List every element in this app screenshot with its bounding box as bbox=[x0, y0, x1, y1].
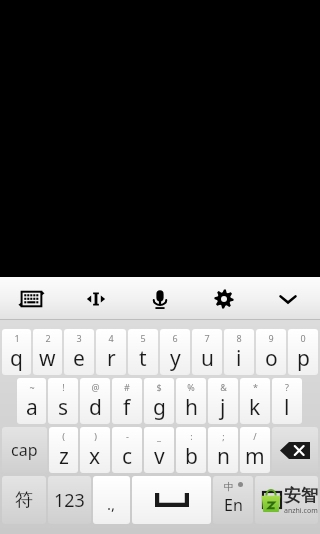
button[interactable]: 2 bbox=[33, 329, 62, 375]
button[interactable]: Keyboard layout bbox=[0, 277, 64, 320]
staticText: j bbox=[220, 393, 226, 422]
staticText: 6 bbox=[172, 332, 178, 344]
button[interactable]: % bbox=[176, 378, 206, 424]
staticText: k bbox=[249, 393, 261, 422]
staticText: 8 bbox=[236, 332, 242, 344]
staticText: 安智 bbox=[284, 485, 318, 506]
staticText: r bbox=[107, 344, 116, 373]
button[interactable]: 0 bbox=[288, 329, 318, 375]
staticText: m bbox=[245, 442, 265, 471]
staticText: y bbox=[170, 344, 181, 373]
staticText: 0 bbox=[300, 332, 306, 344]
button[interactable]: _ bbox=[144, 427, 174, 473]
button[interactable]: cap bbox=[2, 427, 47, 473]
staticText: ., bbox=[107, 494, 116, 514]
staticText: x bbox=[89, 442, 101, 471]
staticText: b bbox=[185, 442, 198, 471]
staticText: cap bbox=[11, 439, 38, 461]
staticText: s bbox=[58, 393, 69, 422]
staticText: anzhi.com bbox=[284, 506, 318, 516]
button[interactable]: Settings bbox=[192, 277, 256, 320]
staticText: q bbox=[10, 344, 23, 373]
staticText: : bbox=[190, 430, 193, 442]
button[interactable]: : bbox=[176, 427, 206, 473]
staticText: l bbox=[284, 393, 290, 422]
other: Space bbox=[132, 476, 211, 524]
staticText: ) bbox=[94, 430, 97, 442]
button[interactable]: 4 bbox=[96, 329, 126, 375]
staticText: h bbox=[185, 393, 198, 422]
button[interactable]: * bbox=[240, 378, 270, 424]
staticText: ( bbox=[62, 430, 65, 442]
staticText: 5 bbox=[140, 332, 146, 344]
staticText: ; bbox=[222, 430, 225, 442]
button[interactable]: 5 bbox=[128, 329, 158, 375]
button[interactable]: ; bbox=[208, 427, 238, 473]
staticText: 3 bbox=[76, 332, 82, 344]
staticText: 4 bbox=[108, 332, 114, 344]
button[interactable]: 符 bbox=[2, 476, 46, 524]
button[interactable]: Move cursor bbox=[64, 277, 128, 320]
staticText: ? bbox=[285, 381, 289, 393]
staticText: - bbox=[126, 430, 129, 442]
button[interactable]: 7 bbox=[192, 329, 222, 375]
button[interactable]: 中 bbox=[213, 476, 253, 524]
button[interactable]: 123 bbox=[48, 476, 91, 524]
button[interactable]: & bbox=[208, 378, 238, 424]
staticText: c bbox=[122, 442, 133, 471]
staticText: 符 bbox=[15, 489, 33, 512]
button[interactable]: 6 bbox=[160, 329, 190, 375]
button[interactable]: Hide keyboard bbox=[256, 277, 320, 320]
staticText: 2 bbox=[45, 332, 51, 344]
staticText: 1 bbox=[14, 332, 20, 344]
staticText: i bbox=[236, 344, 242, 373]
staticText: d bbox=[89, 393, 102, 422]
staticText: t bbox=[139, 344, 147, 373]
button[interactable]: ? bbox=[272, 378, 302, 424]
other: Backspace bbox=[272, 427, 318, 473]
staticText: o bbox=[265, 344, 278, 373]
staticText: @ bbox=[91, 381, 100, 393]
staticText: e bbox=[73, 344, 85, 373]
button[interactable]: Voice input bbox=[128, 277, 192, 320]
button[interactable]: Backspace bbox=[272, 427, 318, 473]
staticText: & bbox=[220, 381, 227, 393]
staticText: v bbox=[154, 442, 165, 471]
staticText: En bbox=[224, 494, 243, 516]
staticText: % bbox=[187, 381, 195, 393]
button[interactable]: $ bbox=[144, 378, 174, 424]
staticText: $ bbox=[156, 381, 162, 393]
staticText: 7 bbox=[204, 332, 210, 344]
button[interactable]: 8 bbox=[224, 329, 254, 375]
button[interactable]: ( bbox=[49, 427, 78, 473]
staticText: u bbox=[201, 344, 214, 373]
staticText: ~ bbox=[29, 381, 35, 393]
staticText: 中 bbox=[224, 480, 234, 493]
other: Enter bbox=[255, 476, 318, 524]
button[interactable]: - bbox=[112, 427, 142, 473]
button[interactable]: 1 bbox=[2, 329, 31, 375]
button[interactable]: Enter bbox=[255, 476, 318, 524]
button[interactable]: 3 bbox=[64, 329, 94, 375]
staticText: / bbox=[253, 430, 257, 442]
button[interactable]: ~ bbox=[17, 378, 46, 424]
button[interactable]: ) bbox=[80, 427, 110, 473]
staticText: 123 bbox=[54, 488, 85, 513]
button[interactable]: ., bbox=[93, 476, 130, 524]
button[interactable]: @ bbox=[80, 378, 110, 424]
button[interactable]: 9 bbox=[256, 329, 286, 375]
button[interactable]: ! bbox=[48, 378, 78, 424]
staticText: g bbox=[153, 393, 166, 422]
button[interactable]: / bbox=[240, 427, 270, 473]
button[interactable]: Space bbox=[132, 476, 211, 524]
staticText: z bbox=[59, 442, 69, 471]
staticText: w bbox=[39, 344, 56, 373]
staticText: a bbox=[26, 393, 38, 422]
staticText: f bbox=[123, 393, 131, 422]
staticText: 9 bbox=[268, 332, 274, 344]
staticText: p bbox=[297, 344, 310, 373]
button[interactable]: # bbox=[112, 378, 142, 424]
staticText: # bbox=[124, 381, 130, 393]
staticText: * bbox=[253, 381, 258, 393]
staticText: ! bbox=[62, 381, 65, 393]
